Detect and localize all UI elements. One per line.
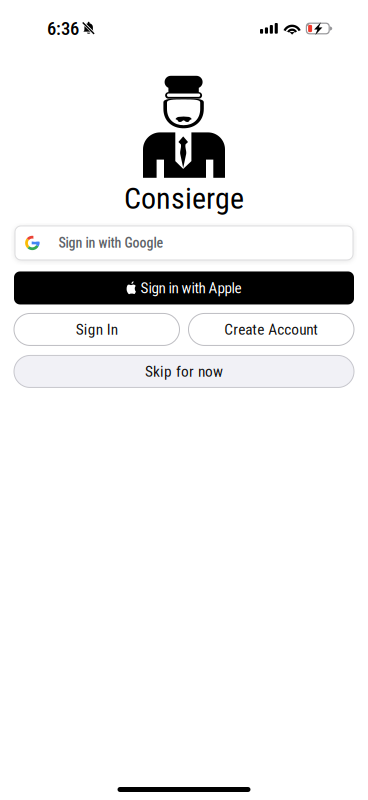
staticText: 6:36: [47, 18, 79, 39]
button[interactable]: Sign in with Google: [15, 226, 353, 260]
staticText: Sign in with Apple: [140, 279, 241, 297]
button[interactable]: Sign in with Apple: [14, 271, 354, 304]
button[interactable]: Skip for now: [14, 355, 354, 387]
button[interactable]: Sign In: [14, 313, 179, 345]
staticText: Skip for now: [145, 362, 223, 380]
staticText: Create Account: [224, 320, 318, 338]
staticText: Sign in with Google: [59, 235, 164, 251]
button[interactable]: Create Account: [188, 313, 354, 345]
staticText: Sign In: [76, 320, 118, 338]
staticText: Consierge: [124, 181, 244, 216]
